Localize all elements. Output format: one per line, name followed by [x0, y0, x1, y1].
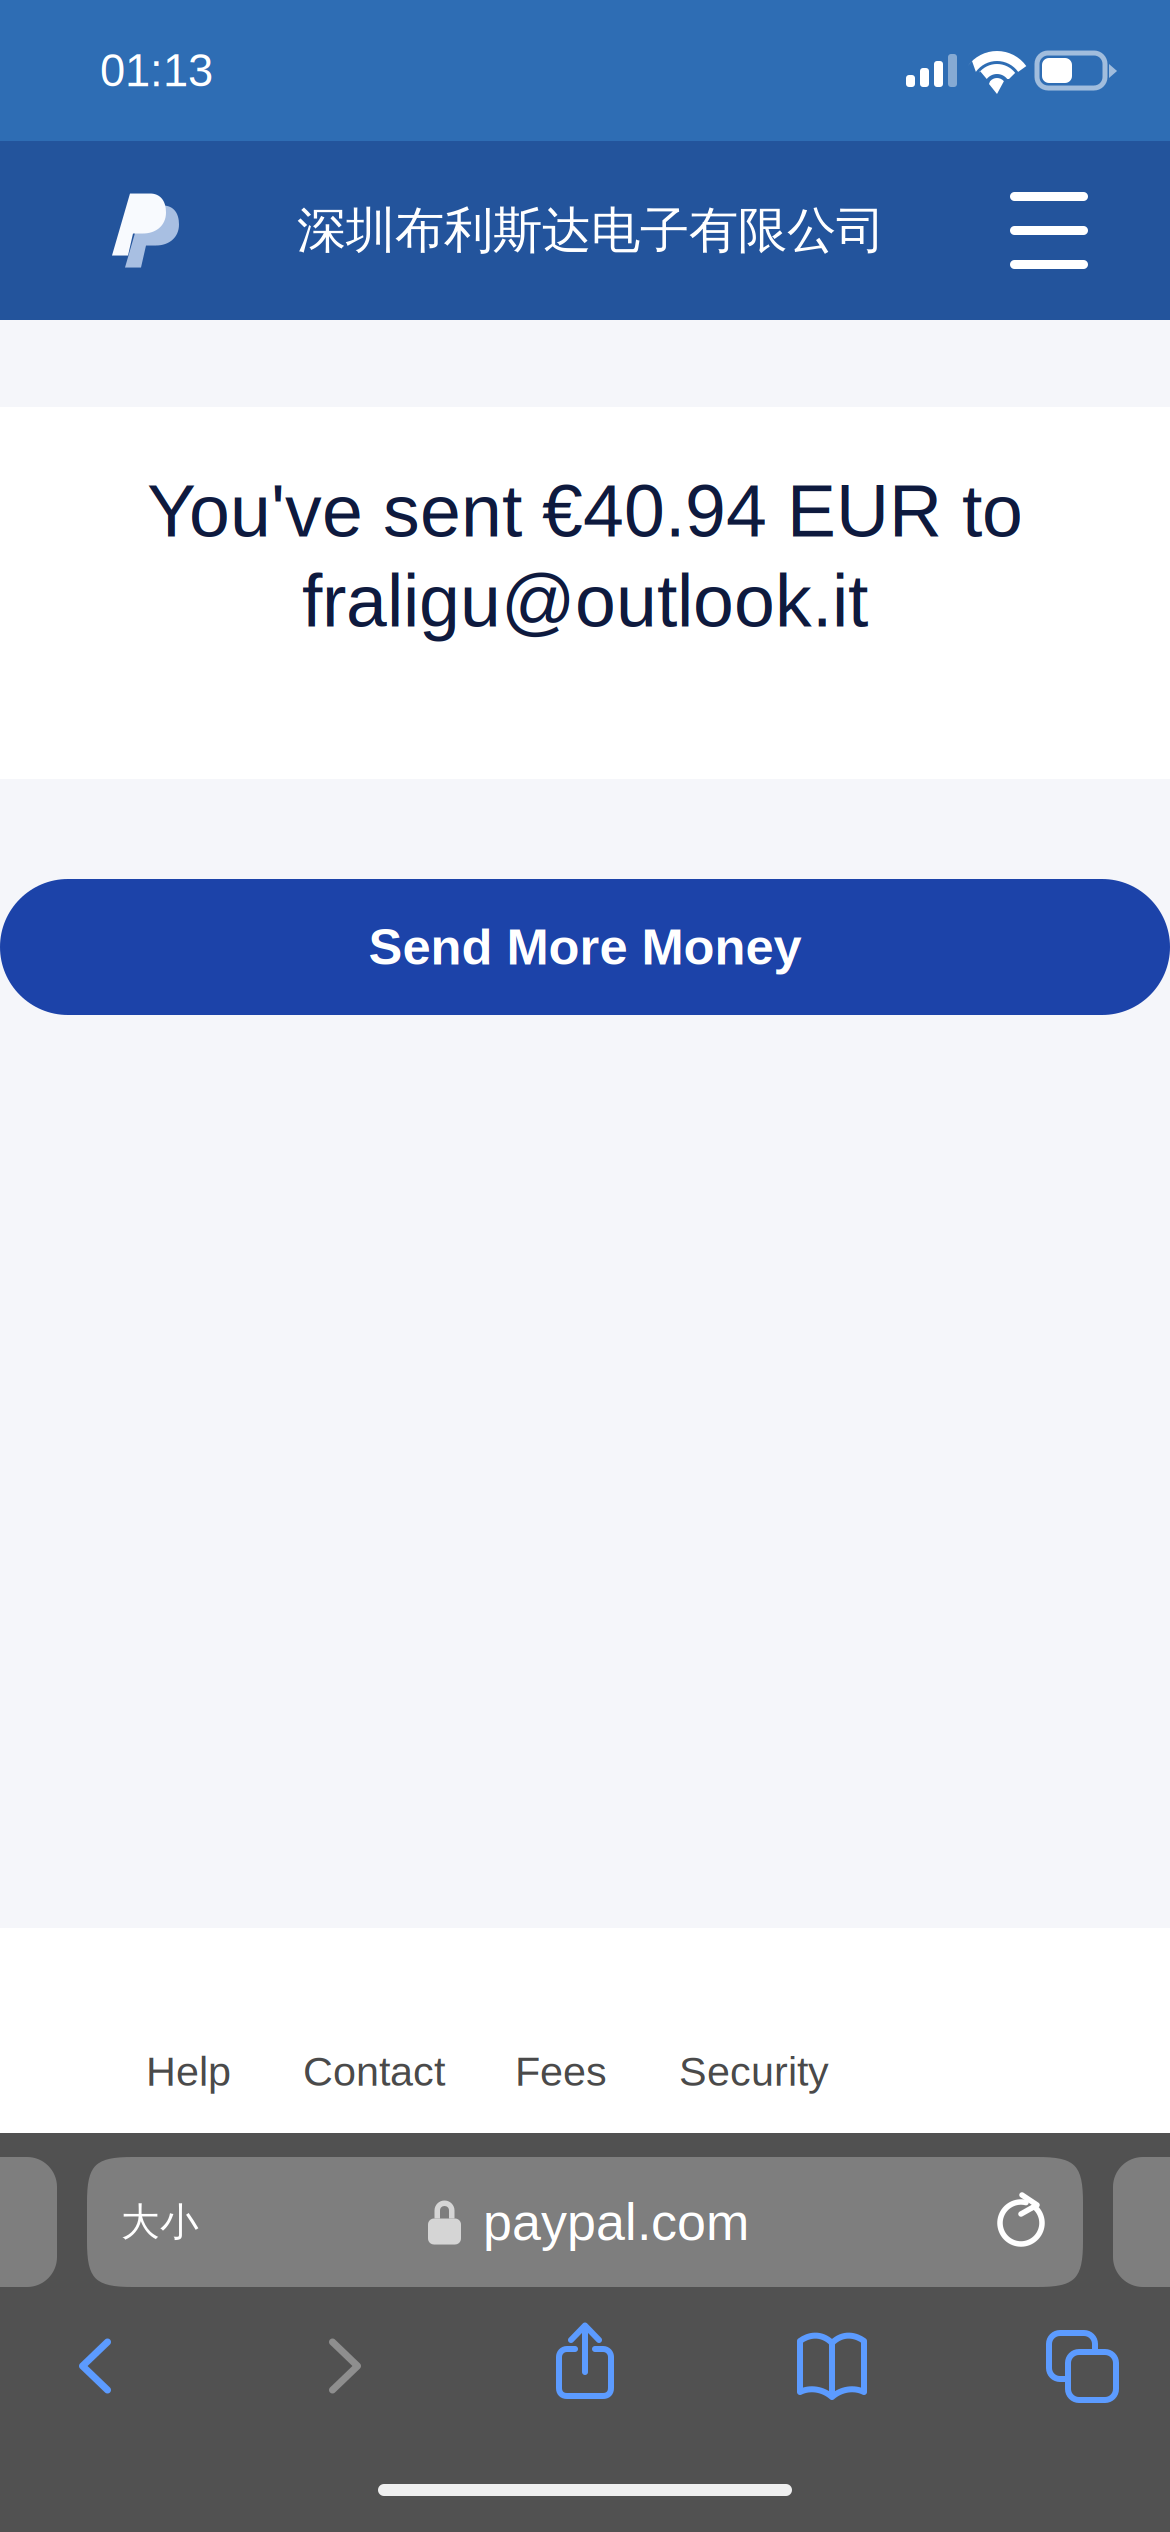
- button[interactable]: Help: [146, 1947, 303, 2114]
- staticText: 深圳布利斯达电子有限公司: [297, 199, 885, 261]
- staticText: 01:13: [100, 45, 213, 96]
- staticText: Contact: [303, 2048, 445, 2095]
- button[interactable]: Contact: [303, 1947, 515, 2114]
- button[interactable]: Menu: [1010, 141, 1088, 320]
- staticText: You've sent €40.94 EUR to: [147, 470, 1023, 552]
- staticText: paypal.com: [483, 2193, 749, 2251]
- button[interactable]: Tabs: [1008, 2303, 1156, 2429]
- button[interactable]: Security: [679, 1947, 829, 2114]
- button[interactable]: PayPal home: [112, 141, 176, 320]
- staticText: Send More Money: [368, 919, 801, 975]
- staticText: Help: [146, 2048, 231, 2095]
- button[interactable]: Forward: [176, 2303, 514, 2429]
- staticText: fraligu@outlook.it: [302, 560, 868, 642]
- staticText: 大小: [121, 2198, 199, 2246]
- staticText: Security: [679, 2048, 829, 2095]
- button[interactable]: Share: [514, 2303, 656, 2429]
- button[interactable]: Send More Money: [0, 879, 1170, 1015]
- staticText: Fees: [515, 2048, 607, 2095]
- button[interactable]: Fees: [515, 1947, 679, 2114]
- button[interactable]: Bookmarks: [656, 2303, 1008, 2429]
- button[interactable]: Back: [14, 2303, 176, 2429]
- button[interactable]: Address bar, paypal.com: [87, 2157, 1083, 2287]
